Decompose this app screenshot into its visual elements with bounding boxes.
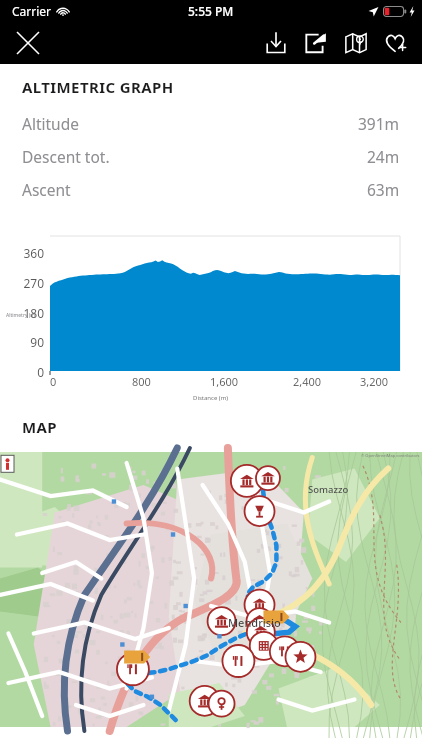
staticText: © OpenStreetMap contributors xyxy=(361,453,420,458)
staticText: 360 xyxy=(0,245,44,261)
button[interactable]: Descent tot. xyxy=(0,140,422,173)
staticText: 391m xyxy=(358,113,400,134)
staticText: 270 xyxy=(0,275,44,291)
button[interactable]: Route map xyxy=(0,452,422,727)
staticText: Somazzo xyxy=(308,483,349,496)
staticText: 0 xyxy=(0,364,44,380)
staticText: Carrier xyxy=(12,3,52,19)
staticText: Altimetry (m) xyxy=(6,312,46,319)
button[interactable]: Ascent xyxy=(0,173,422,206)
staticText: 24m xyxy=(367,146,400,167)
staticText: Mendrisio xyxy=(228,615,281,630)
staticText: 1,600 xyxy=(210,374,239,389)
button[interactable]: Close xyxy=(8,23,48,63)
button[interactable]: Download xyxy=(256,23,296,63)
staticText: 0 xyxy=(50,374,57,389)
button[interactable]: Add to favourites xyxy=(376,23,416,63)
staticText: 2,400 xyxy=(293,374,322,389)
staticText: Descent tot. xyxy=(22,146,110,167)
staticText: MAP xyxy=(22,417,58,437)
button[interactable]: Altitude xyxy=(0,107,422,140)
button[interactable]: Share xyxy=(296,23,336,63)
staticText: 90 xyxy=(0,334,44,350)
staticText: 63m xyxy=(367,179,400,200)
staticText: ALTIMETRIC GRAPH xyxy=(22,77,174,97)
staticText: Ascent xyxy=(22,179,71,200)
staticText: 180 xyxy=(0,305,44,321)
button[interactable]: Map xyxy=(336,23,376,63)
staticText: 5:55 PM xyxy=(188,3,234,19)
staticText: 800 xyxy=(132,374,151,389)
staticText: Distance (m) xyxy=(193,394,229,402)
staticText: 3,200 xyxy=(360,374,389,389)
staticText: Altitude xyxy=(22,113,79,134)
